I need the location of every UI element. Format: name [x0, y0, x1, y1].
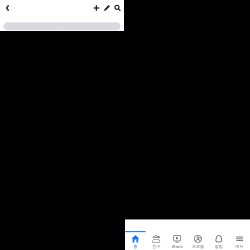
button[interactable]: Back: [3, 2, 12, 14]
button[interactable]: 홈: [125, 232, 146, 250]
button[interactable]: Search: [112, 2, 123, 14]
button[interactable]: New: [91, 2, 102, 14]
staticText: 메뉴: [236, 244, 244, 249]
button[interactable]: 메뉴: [229, 232, 250, 250]
staticText: Watch: [172, 244, 183, 249]
button[interactable]: 프로필: [187, 232, 208, 250]
button[interactable]: 알림: [208, 232, 229, 250]
staticText: 친구: [152, 244, 160, 249]
staticText: 알림: [215, 244, 223, 249]
button[interactable]: 친구: [146, 232, 167, 250]
staticText: 프로필: [192, 244, 204, 249]
staticText: 홈: [133, 244, 137, 249]
button[interactable]: Search: [3, 22, 121, 30]
button[interactable]: Watch: [167, 232, 187, 250]
button[interactable]: Compose: [102, 2, 112, 14]
